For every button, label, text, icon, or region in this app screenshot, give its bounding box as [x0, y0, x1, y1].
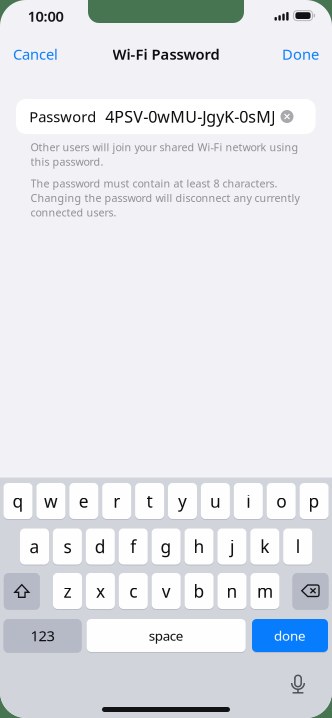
button[interactable]: v: [152, 573, 181, 610]
staticText: b: [194, 579, 205, 602]
button[interactable]: y: [168, 483, 197, 520]
staticText: c: [129, 579, 137, 602]
button[interactable]: a: [20, 528, 49, 565]
staticText: g: [161, 535, 172, 558]
staticText: r: [113, 489, 120, 512]
staticText: connected users.: [30, 205, 116, 219]
staticText: u: [210, 489, 221, 512]
staticText: s: [63, 535, 71, 558]
staticText: e: [79, 489, 89, 512]
button[interactable]: q: [3, 483, 32, 520]
staticText: Wi-Fi Password: [112, 44, 219, 64]
staticText: t: [147, 489, 153, 512]
staticText: j: [230, 535, 234, 558]
staticText: q: [12, 489, 23, 512]
button[interactable]: done: [252, 619, 328, 653]
staticText: i: [246, 489, 250, 512]
button[interactable]: m: [250, 573, 279, 610]
button[interactable]: p: [300, 483, 329, 520]
staticText: k: [260, 535, 269, 558]
button[interactable]: space: [87, 619, 246, 653]
staticText: p: [309, 489, 320, 512]
button[interactable]: z: [53, 573, 82, 610]
button[interactable]: s: [53, 528, 82, 565]
staticText: this password.: [30, 154, 103, 169]
staticText: done: [274, 627, 306, 644]
staticText: f: [130, 535, 136, 558]
staticText: z: [63, 579, 71, 602]
button[interactable]: Clear text: [272, 99, 302, 134]
staticText: 10:00: [27, 6, 63, 26]
button[interactable]: e: [69, 483, 98, 520]
button[interactable]: g: [152, 528, 181, 565]
button[interactable]: f: [119, 528, 148, 565]
staticText: 4PSV-0wMU-JgyK-0sMJ: [105, 106, 275, 127]
staticText: Cancel: [13, 44, 58, 64]
button[interactable]: c: [119, 573, 148, 610]
button[interactable]: 123: [4, 619, 82, 653]
staticText: The password must contain at least 8 cha…: [30, 176, 277, 190]
staticText: a: [29, 535, 39, 558]
button[interactable]: n: [217, 573, 246, 610]
staticText: Changing the password will disconnect an…: [30, 191, 299, 205]
staticText: Password: [29, 107, 96, 126]
button[interactable]: j: [217, 528, 246, 565]
button[interactable]: b: [185, 573, 214, 610]
staticText: Other users will join your shared Wi-Fi …: [30, 140, 298, 154]
staticText: x: [96, 579, 105, 602]
button[interactable]: r: [102, 483, 131, 520]
staticText: v: [162, 579, 171, 602]
staticText: h: [193, 535, 204, 558]
staticText: l: [296, 535, 300, 558]
staticText: n: [226, 579, 237, 602]
button[interactable]: o: [267, 483, 296, 520]
staticText: space: [149, 627, 184, 644]
button[interactable]: x: [86, 573, 115, 610]
button[interactable]: w: [36, 483, 65, 520]
button[interactable]: d: [86, 528, 115, 565]
button[interactable]: h: [184, 528, 213, 565]
button[interactable]: Delete: [292, 573, 328, 610]
button[interactable]: k: [250, 528, 279, 565]
button[interactable]: Dictate: [286, 672, 310, 695]
staticText: y: [178, 489, 187, 512]
button[interactable]: Shift: [4, 573, 40, 610]
button[interactable]: u: [201, 483, 230, 520]
button[interactable]: t: [135, 483, 164, 520]
button[interactable]: Done: [260, 34, 332, 74]
staticText: o: [276, 489, 286, 512]
button[interactable]: Cancel: [0, 34, 72, 74]
staticText: Done: [282, 44, 319, 64]
staticText: d: [95, 535, 106, 558]
staticText: w: [44, 489, 58, 512]
staticText: 123: [31, 626, 55, 645]
button[interactable]: l: [283, 528, 312, 565]
button[interactable]: i: [234, 483, 263, 520]
staticText: m: [257, 579, 273, 602]
